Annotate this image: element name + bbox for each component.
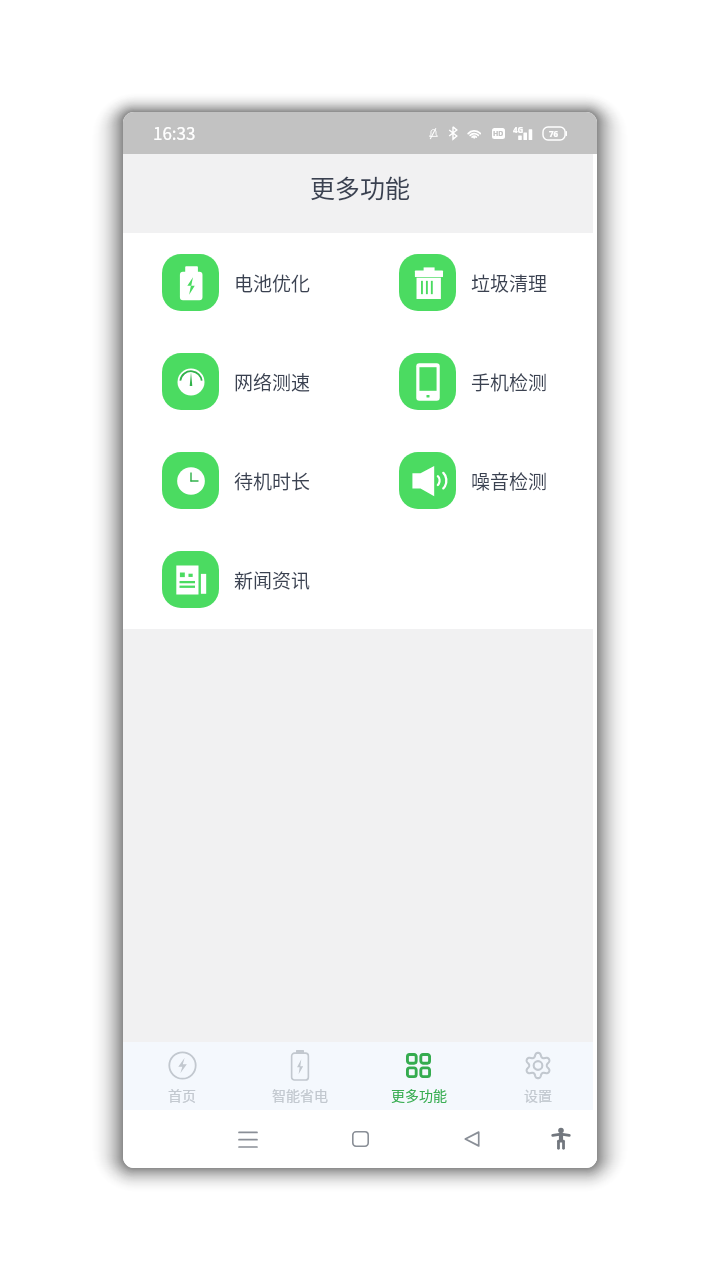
staticText: 垃圾清理 [471,269,548,297]
staticText: 首页 [168,1085,196,1105]
staticText: 网络测速 [234,368,311,396]
staticText: 76 [549,128,559,139]
button[interactable]: 待机时长 [123,431,360,530]
staticText: HD [493,129,504,139]
button[interactable]: 更多功能 [359,1042,478,1110]
staticText: 噪音检测 [471,467,548,495]
staticText: 电池优化 [234,269,311,297]
button[interactable]: Back [416,1117,528,1161]
button[interactable]: Accessibility [539,1117,583,1161]
staticText: 智能省电 [272,1085,328,1105]
button[interactable]: 手机检测 [360,332,597,431]
button[interactable]: 首页 [123,1042,241,1110]
staticText: 手机检测 [471,368,548,396]
button[interactable]: Recent apps [192,1117,304,1161]
staticText: 更多功能 [310,169,411,205]
button[interactable]: 噪音检测 [360,431,597,530]
button[interactable]: 网络测速 [123,332,360,431]
button[interactable]: 新闻资讯 [123,530,360,629]
staticText: 更多功能 [391,1085,447,1105]
button[interactable]: 垃圾清理 [360,233,597,332]
button[interactable]: Home [304,1117,416,1161]
staticText: 设置 [524,1085,552,1105]
staticText: 新闻资讯 [234,566,311,594]
staticText: 16:33 [153,120,196,145]
button[interactable]: 智能省电 [241,1042,359,1110]
button[interactable]: 设置 [478,1042,597,1110]
staticText: 待机时长 [234,467,311,495]
button[interactable]: 电池优化 [123,233,360,332]
staticText: 4G [513,124,524,135]
